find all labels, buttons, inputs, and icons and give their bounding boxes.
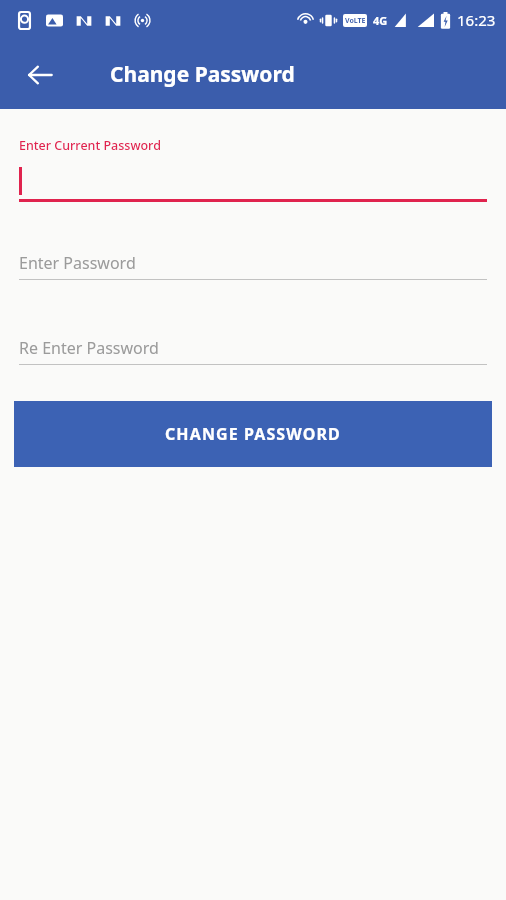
button[interactable]: CHANGE PASSWORD bbox=[14, 401, 492, 467]
staticText: Re Enter Password bbox=[19, 337, 159, 359]
staticText: VoLTE bbox=[345, 16, 366, 26]
button[interactable]: Enter Password bbox=[19, 249, 487, 280]
staticText: 16:23 bbox=[457, 10, 496, 30]
button[interactable]: Re Enter Password bbox=[19, 334, 487, 365]
staticText: Enter Current Password bbox=[19, 137, 161, 154]
staticText: Enter Password bbox=[19, 252, 136, 274]
button[interactable]: Enter Current Password bbox=[19, 137, 487, 202]
button[interactable]: Back bbox=[17, 52, 63, 98]
staticText: 4G bbox=[373, 13, 388, 28]
staticText: Change Password bbox=[110, 60, 295, 89]
staticText: CHANGE PASSWORD bbox=[165, 423, 341, 445]
